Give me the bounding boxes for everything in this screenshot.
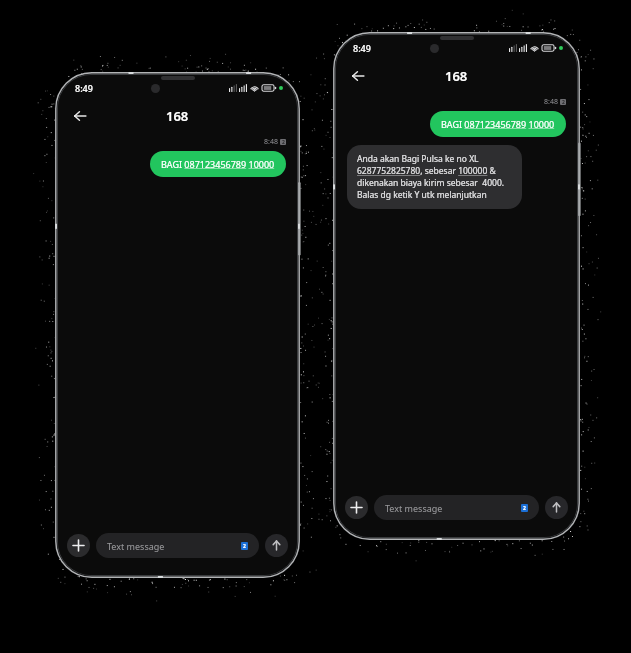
staticText: 8:48 <box>264 137 278 147</box>
button[interactable]: Add attachment <box>67 534 90 557</box>
button[interactable]: Text message <box>96 533 259 558</box>
staticText: BAGI 087123456789 10000 <box>441 118 555 130</box>
staticText: 8:48 <box>544 97 558 107</box>
staticText: 8:49 <box>353 42 371 54</box>
staticText: 2 <box>523 505 526 512</box>
staticText: 8:49 <box>75 82 93 94</box>
staticText: BAGI 087123456789 10000 <box>161 158 275 170</box>
staticText: 2 <box>282 139 285 145</box>
staticText: Text message <box>385 502 443 514</box>
staticText: 168 <box>445 67 468 85</box>
staticText: 2 <box>562 99 565 105</box>
staticText: 168 <box>166 107 189 125</box>
button[interactable]: Anda akan Bagi Pulsa ke no XL 6287752825… <box>347 145 522 209</box>
button[interactable]: Text message <box>374 495 539 520</box>
staticText: 2 <box>243 543 246 550</box>
button[interactable]: BAGI 087123456789 10000 <box>150 151 286 177</box>
button[interactable]: Send <box>265 534 288 557</box>
button[interactable]: Send <box>545 496 568 519</box>
button[interactable]: Back <box>67 103 93 129</box>
staticText: Text message <box>107 540 165 552</box>
button[interactable]: BAGI 087123456789 10000 <box>430 111 566 137</box>
button[interactable]: Add attachment <box>345 496 368 519</box>
staticText: Anda akan Bagi Pulsa ke no XL 6287752825… <box>357 153 512 201</box>
button[interactable]: Back <box>345 63 371 89</box>
